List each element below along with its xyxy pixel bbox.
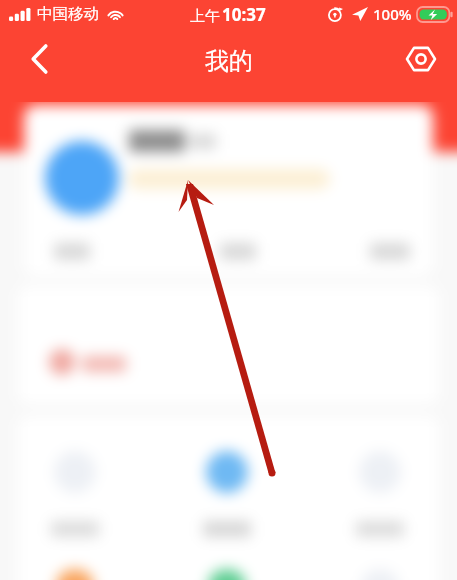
staticText: 10:37 [222, 3, 266, 26]
staticText: 100% [373, 4, 412, 24]
button[interactable]: Back [17, 37, 61, 81]
staticText: 上午 [190, 7, 220, 26]
button[interactable]: Settings [399, 37, 443, 81]
staticText: 中国移动 [37, 4, 99, 24]
staticText: 我的 [205, 46, 253, 76]
